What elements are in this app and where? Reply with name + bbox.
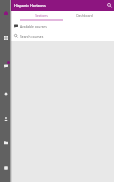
button[interactable]: Dashboard: [63, 11, 106, 21]
button[interactable]: Sections: [20, 11, 63, 21]
button[interactable]: Profile: [0, 115, 10, 124]
button[interactable]: Messages: [0, 62, 10, 71]
button[interactable]: Settings: [0, 164, 10, 173]
staticText: Hispanic Horizons: [14, 3, 46, 8]
staticText: Search courses: [20, 34, 44, 38]
button[interactable]: Search: [105, 1, 114, 10]
staticText: Available courses: [20, 24, 47, 28]
button[interactable]: Available courses: [11, 21, 114, 31]
button[interactable]: Notifications: [0, 90, 10, 99]
staticText: Dashboard: [76, 14, 93, 18]
button[interactable]: Dashboard: [0, 34, 10, 43]
staticText: Sections: [35, 14, 48, 18]
button[interactable]: Home: [0, 9, 10, 18]
button[interactable]: Files: [0, 139, 10, 148]
button[interactable]: Search courses: [11, 31, 114, 41]
